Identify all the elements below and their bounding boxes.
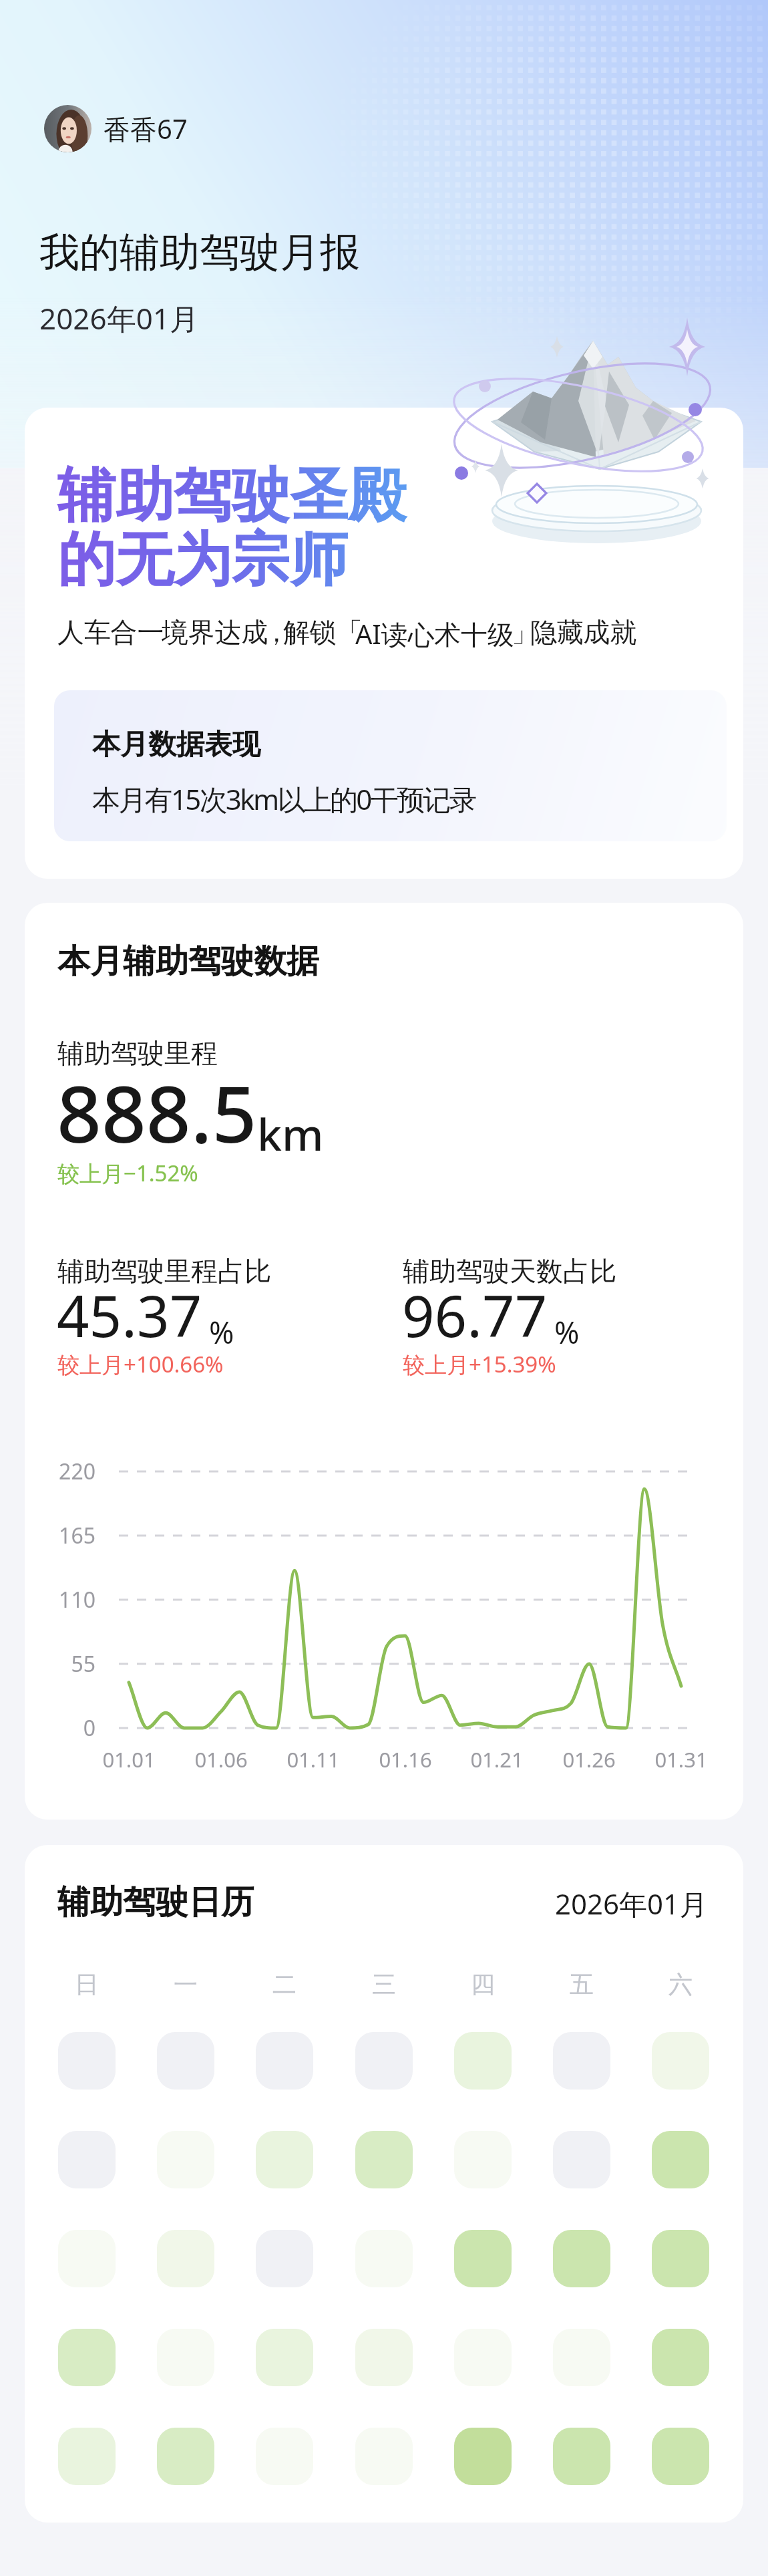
staticText: 我的辅助驾驶月报 bbox=[39, 227, 360, 278]
staticText: 165 bbox=[59, 1521, 95, 1550]
button[interactable] bbox=[58, 2329, 116, 2386]
staticText: 」 bbox=[512, 615, 538, 649]
button[interactable] bbox=[355, 2329, 413, 2386]
other: Profile photo bbox=[44, 105, 91, 152]
button[interactable] bbox=[58, 2131, 116, 2188]
staticText: 01.26 bbox=[562, 1745, 616, 1773]
staticText: 本月数据表现 bbox=[92, 727, 260, 762]
button[interactable] bbox=[652, 2329, 709, 2386]
staticText: 解锁 bbox=[283, 615, 337, 649]
staticText: 辅助驾驶里程 bbox=[57, 1036, 218, 1070]
button[interactable] bbox=[454, 2230, 512, 2287]
button[interactable] bbox=[355, 2428, 413, 2485]
staticText: 96.77 bbox=[402, 1276, 548, 1354]
staticText: 辅助驾驶圣殿 的无为宗师 bbox=[57, 459, 406, 597]
staticText: 本月有15次3km以上的0干预记录 bbox=[92, 780, 475, 818]
button[interactable] bbox=[454, 2329, 512, 2386]
button[interactable] bbox=[157, 2032, 214, 2090]
staticText: 六 bbox=[668, 1969, 693, 1999]
staticText: 110 bbox=[59, 1585, 95, 1614]
staticText: 2026年01月 bbox=[39, 298, 200, 338]
button[interactable] bbox=[256, 2230, 313, 2287]
button[interactable] bbox=[454, 2131, 512, 2188]
staticText: 四 bbox=[471, 1969, 495, 1999]
button[interactable] bbox=[157, 2131, 214, 2188]
staticText: 较上月+100.66% bbox=[57, 1349, 224, 1379]
staticText: 三 bbox=[372, 1969, 396, 1999]
staticText: 五 bbox=[570, 1969, 594, 1999]
button[interactable] bbox=[58, 2032, 116, 2090]
button[interactable] bbox=[256, 2428, 313, 2485]
staticText: 888.5 bbox=[57, 1059, 257, 1165]
staticText: 01.06 bbox=[194, 1745, 248, 1773]
staticText: % bbox=[209, 1312, 234, 1352]
staticText: 辅助驾驶天数占比 bbox=[403, 1254, 616, 1288]
staticText: 220 bbox=[59, 1457, 95, 1486]
staticText: AI读心术十级 bbox=[355, 615, 514, 652]
button[interactable] bbox=[157, 2230, 214, 2287]
button[interactable] bbox=[355, 2032, 413, 2090]
button[interactable] bbox=[355, 2131, 413, 2188]
button[interactable] bbox=[553, 2329, 610, 2386]
staticText: 辅助驾驶里程占比 bbox=[57, 1254, 271, 1288]
staticText: 较上月+15.39% bbox=[403, 1349, 556, 1379]
staticText: 隐藏成就 bbox=[530, 615, 637, 649]
button[interactable] bbox=[454, 2032, 512, 2090]
button[interactable] bbox=[256, 2329, 313, 2386]
staticText: % bbox=[554, 1312, 580, 1352]
staticText: 较上月−1.52% bbox=[57, 1158, 198, 1188]
staticText: 二 bbox=[272, 1969, 297, 1999]
staticText: 01.11 bbox=[286, 1745, 340, 1773]
staticText: 01.21 bbox=[470, 1745, 524, 1773]
button[interactable] bbox=[652, 2428, 709, 2485]
button[interactable] bbox=[157, 2428, 214, 2485]
button[interactable] bbox=[256, 2032, 313, 2090]
staticText: 香香67 bbox=[104, 110, 188, 147]
staticText: 境界达成 bbox=[162, 615, 268, 649]
staticText: 01.01 bbox=[102, 1745, 156, 1773]
staticText: 辅助驾驶日历 bbox=[57, 1882, 254, 1923]
staticText: 「 bbox=[336, 615, 363, 649]
button[interactable] bbox=[58, 2428, 116, 2485]
button[interactable] bbox=[553, 2032, 610, 2090]
staticText: 2026年01月 bbox=[555, 1884, 708, 1922]
button[interactable] bbox=[553, 2230, 610, 2287]
staticText: 人车合一 bbox=[57, 615, 164, 649]
button[interactable] bbox=[652, 2131, 709, 2188]
staticText: 本月辅助驾驶数据 bbox=[57, 941, 319, 982]
staticText: ， bbox=[263, 615, 290, 649]
staticText: 日 bbox=[75, 1969, 99, 1999]
staticText: 45.37 bbox=[57, 1276, 202, 1354]
button[interactable] bbox=[652, 2230, 709, 2287]
staticText: 01.16 bbox=[379, 1745, 432, 1773]
button[interactable] bbox=[58, 2230, 116, 2287]
button[interactable] bbox=[256, 2131, 313, 2188]
button[interactable] bbox=[454, 2428, 512, 2485]
button[interactable] bbox=[652, 2032, 709, 2090]
button[interactable] bbox=[355, 2230, 413, 2287]
button[interactable] bbox=[157, 2329, 214, 2386]
button[interactable]: Profile photo bbox=[44, 105, 188, 152]
staticText: 一 bbox=[174, 1969, 198, 1999]
staticText: 01.31 bbox=[654, 1745, 708, 1773]
staticText: 55 bbox=[71, 1649, 95, 1679]
staticText: 0 bbox=[83, 1713, 95, 1743]
button[interactable] bbox=[553, 2428, 610, 2485]
button[interactable] bbox=[553, 2131, 610, 2188]
staticText: km bbox=[257, 1103, 324, 1163]
